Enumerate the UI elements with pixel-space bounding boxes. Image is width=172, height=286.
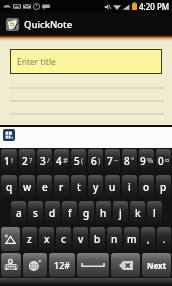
button[interactable]: 6 <box>88 149 103 173</box>
staticText: f <box>68 206 72 220</box>
staticText: b <box>94 232 101 246</box>
staticText: m <box>127 232 137 246</box>
staticText: , <box>147 233 150 245</box>
button[interactable]: 9 <box>139 149 154 173</box>
button[interactable]: s <box>28 201 43 225</box>
staticText: 0 <box>158 154 164 168</box>
button[interactable]: Backspace <box>111 253 140 277</box>
button[interactable]: z <box>22 227 37 251</box>
staticText: Enter title <box>17 56 56 68</box>
staticText: . <box>163 233 166 245</box>
button[interactable]: Space <box>77 253 109 277</box>
staticText: ¤ <box>165 155 170 165</box>
button[interactable]: 2 <box>19 149 35 173</box>
button[interactable]: Enter title <box>10 49 162 74</box>
staticText: # <box>63 155 68 165</box>
button[interactable]: u <box>105 175 120 199</box>
staticText: ~ <box>114 155 119 165</box>
button[interactable]: 3 <box>37 149 52 173</box>
staticText: 2 <box>22 154 28 168</box>
button[interactable]: q <box>1 175 17 199</box>
button[interactable]: b <box>90 227 105 251</box>
staticText: ° <box>131 155 135 165</box>
button[interactable]: h <box>96 201 111 225</box>
staticText: 8 <box>124 154 130 168</box>
staticText: l <box>153 206 156 220</box>
staticText: ( <box>81 155 84 165</box>
staticText: 1 <box>4 154 10 168</box>
staticText: y <box>93 180 99 194</box>
staticText: g <box>83 206 90 220</box>
staticText: s <box>33 206 38 220</box>
button[interactable]: Shift <box>1 227 20 251</box>
button[interactable]: y <box>88 175 103 199</box>
button[interactable]: p <box>156 175 171 199</box>
button[interactable]: t <box>71 175 86 199</box>
button[interactable]: g <box>79 201 94 225</box>
button[interactable]: 7 <box>105 149 120 173</box>
staticText: r <box>59 180 64 194</box>
staticText: 4:20 PM <box>139 1 170 12</box>
staticText: % <box>147 155 154 165</box>
button[interactable]: o <box>139 175 154 199</box>
staticText: d <box>49 206 56 220</box>
staticText: x <box>44 232 50 246</box>
staticText: u <box>109 180 116 194</box>
button[interactable]: 12# <box>49 253 75 277</box>
staticText: p <box>160 180 167 194</box>
other: Change language <box>28 259 42 271</box>
button[interactable]: Change language <box>23 253 47 277</box>
other: Keyboard settings <box>4 259 18 271</box>
staticText: 5 <box>74 154 80 168</box>
button[interactable]: a <box>11 201 26 225</box>
staticText: Next <box>147 260 167 271</box>
other: Backspace <box>119 261 133 270</box>
staticText: 7 <box>107 154 113 168</box>
button[interactable]: l <box>147 201 162 225</box>
button[interactable]: m <box>124 227 139 251</box>
staticText: e <box>42 180 48 194</box>
staticText: ) <box>98 155 101 165</box>
staticText: n <box>111 232 118 246</box>
button[interactable]: w <box>19 175 35 199</box>
button[interactable]: k <box>130 201 145 225</box>
button[interactable]: 8 <box>122 149 137 173</box>
button[interactable]: 0 <box>156 149 171 173</box>
staticText: q <box>6 180 13 194</box>
staticText: 9 <box>140 154 146 168</box>
other: Space <box>82 262 104 269</box>
staticText: ! <box>11 155 14 165</box>
staticText: z <box>27 232 32 246</box>
staticText: j <box>119 206 122 220</box>
button[interactable]: r <box>54 175 69 199</box>
button[interactable]: f <box>62 201 77 225</box>
button[interactable]: i <box>122 175 137 199</box>
button[interactable]: j <box>113 201 128 225</box>
button[interactable]: . <box>157 227 171 251</box>
staticText: k <box>135 206 141 220</box>
button[interactable]: d <box>45 201 60 225</box>
staticText: c <box>61 232 66 246</box>
button[interactable]: , <box>141 227 155 251</box>
staticText: h <box>100 206 107 220</box>
button[interactable]: Keyboard settings <box>1 253 21 277</box>
staticText: 3 <box>40 154 46 168</box>
staticText: QuickNote <box>24 18 73 31</box>
staticText: ? <box>29 155 33 165</box>
button[interactable]: n <box>107 227 122 251</box>
staticText: a <box>16 206 22 220</box>
button[interactable]: 5 <box>71 149 86 173</box>
button[interactable]: Select input method <box>3 129 15 141</box>
staticText: i <box>128 180 131 194</box>
staticText: 12# <box>54 259 71 271</box>
button[interactable]: e <box>37 175 52 199</box>
button[interactable]: c <box>56 227 71 251</box>
button[interactable]: Next <box>142 253 171 277</box>
button[interactable]: v <box>73 227 88 251</box>
staticText: o <box>143 180 150 194</box>
button[interactable]: 4 <box>54 149 69 173</box>
button[interactable]: x <box>39 227 54 251</box>
staticText: 6 <box>91 154 97 168</box>
button[interactable]: 1 <box>1 149 17 173</box>
staticText: w <box>23 180 32 194</box>
